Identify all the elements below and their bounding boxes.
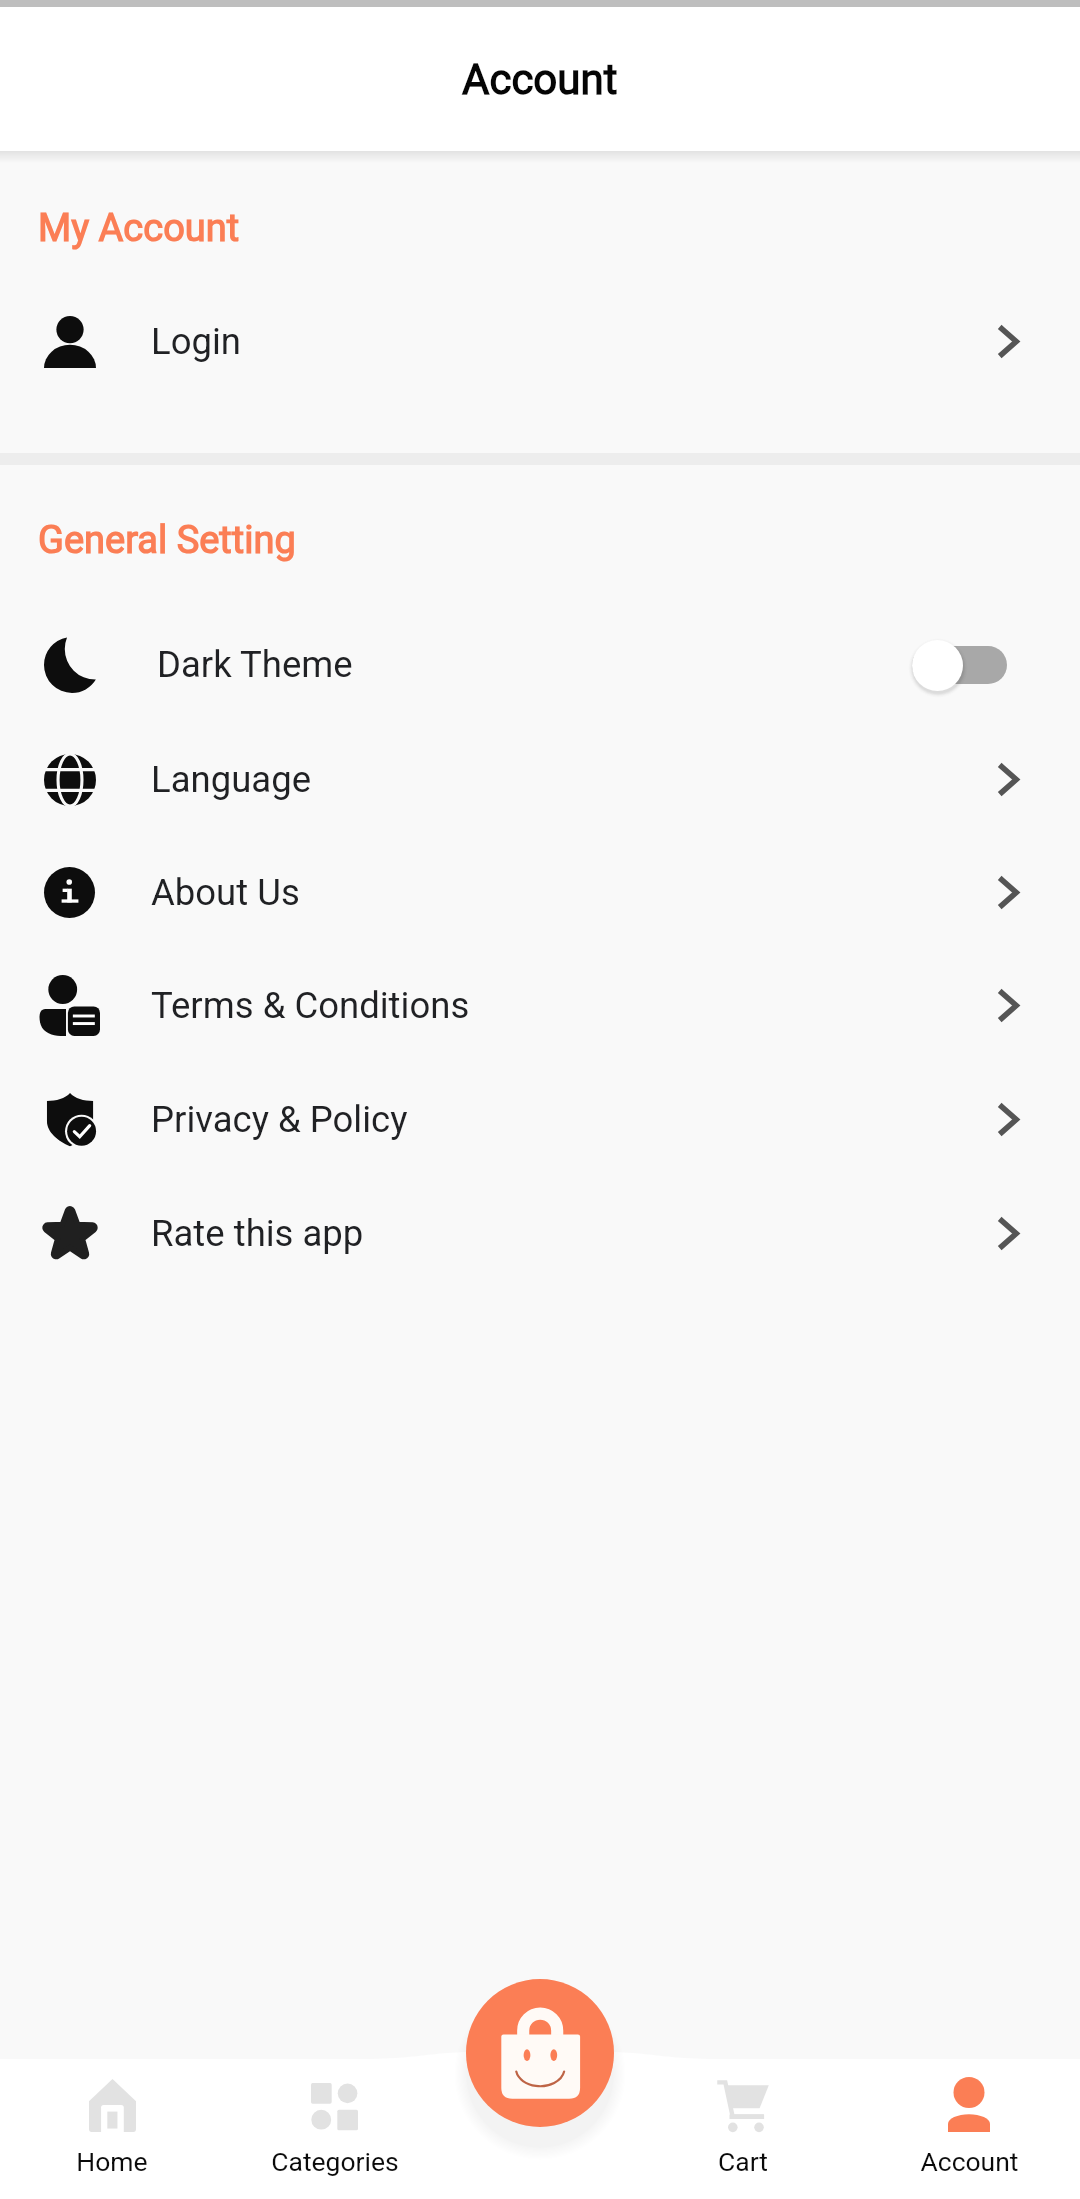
button[interactable]: Categories: [224, 2052, 446, 2199]
staticText: Rate this app: [151, 1212, 364, 1255]
button[interactable]: About Us: [0, 836, 1080, 949]
staticText: Login: [151, 320, 242, 363]
button[interactable]: Cart: [632, 2052, 854, 2199]
button[interactable]: Language: [0, 723, 1080, 836]
button[interactable]: Home: [1, 2052, 223, 2199]
button[interactable]: Privacy & Policy: [0, 1063, 1080, 1176]
button[interactable]: Login: [0, 285, 1080, 398]
staticText: Home: [76, 2146, 148, 2177]
button[interactable]: Account: [858, 2052, 1080, 2199]
staticText: Account: [920, 2146, 1019, 2177]
staticText: Cart: [718, 2146, 768, 2177]
staticText: Terms & Conditions: [151, 984, 470, 1027]
button[interactable]: Shop: [466, 1979, 614, 2127]
button[interactable]: Terms & Conditions: [0, 949, 1080, 1062]
button[interactable]: Rate this app: [0, 1177, 1080, 1290]
staticText: Dark Theme: [157, 643, 353, 686]
staticText: General Setting: [38, 518, 296, 563]
staticText: Privacy & Policy: [151, 1098, 408, 1141]
staticText: Categories: [271, 2146, 399, 2177]
staticText: Account: [462, 55, 618, 104]
button[interactable]: Dark Theme: [0, 608, 1080, 721]
staticText: About Us: [151, 871, 300, 914]
staticText: Language: [151, 758, 311, 801]
staticText: My Account: [38, 206, 240, 251]
